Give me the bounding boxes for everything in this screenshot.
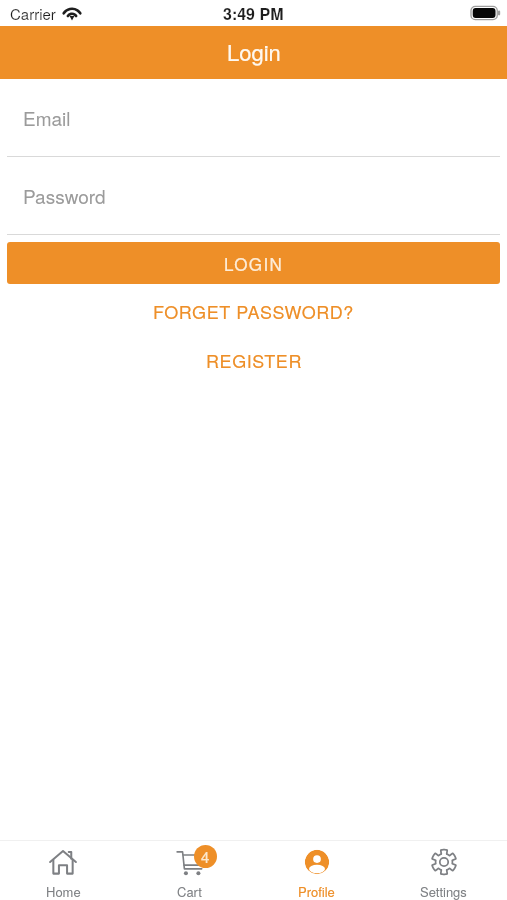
- button[interactable]: REGISTER: [0, 346, 507, 374]
- button[interactable]: Password: [7, 177, 500, 235]
- button[interactable]: LOGIN: [7, 242, 500, 284]
- button[interactable]: Cart: [126, 841, 253, 900]
- button[interactable]: FORGET PASSWORD?: [0, 297, 507, 325]
- button[interactable]: Settings: [380, 841, 507, 900]
- staticText: Login: [227, 36, 281, 68]
- staticText: FORGET PASSWORD?: [153, 298, 354, 324]
- staticText: Home: [46, 882, 81, 900]
- staticText: Profile: [298, 882, 335, 900]
- staticText: LOGIN: [224, 251, 284, 275]
- staticText: 3:49 PM: [223, 2, 284, 25]
- staticText: Cart: [177, 882, 202, 900]
- button[interactable]: Profile: [253, 841, 380, 900]
- staticText: Email: [23, 104, 71, 131]
- button[interactable]: Email: [7, 99, 500, 157]
- staticText: Settings: [420, 882, 467, 900]
- staticText: 4: [201, 846, 210, 867]
- staticText: REGISTER: [206, 347, 302, 373]
- button[interactable]: Home: [0, 841, 126, 900]
- staticText: Carrier: [10, 3, 56, 24]
- staticText: Password: [23, 182, 106, 209]
